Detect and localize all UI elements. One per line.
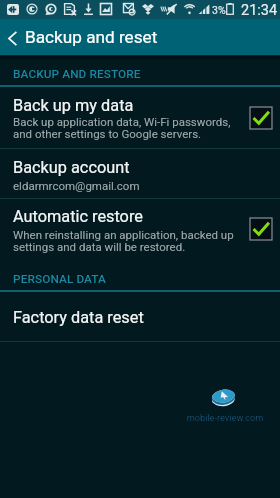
staticText: BACKUP AND RESTORE (13, 67, 141, 81)
staticText: 21:34 (241, 2, 278, 19)
button[interactable] (0, 86, 280, 148)
staticText: Backup and reset (25, 27, 158, 47)
staticText: Back up my data (13, 96, 134, 115)
button[interactable]: Navigate up (0, 19, 24, 55)
button[interactable] (0, 199, 280, 263)
staticText: When reinstalling an application, backed… (13, 228, 234, 241)
staticText: Backup account (13, 158, 130, 177)
staticText: and other settings to Google servers. (13, 127, 202, 140)
staticText: mobile-review.com (185, 412, 265, 423)
staticText: Back up application data, Wi-Fi password… (13, 115, 231, 128)
staticText: PERSONAL DATA (13, 272, 106, 286)
button[interactable]: Checkbox, checked (250, 107, 272, 129)
staticText: 3% (212, 4, 226, 16)
staticText: Factory data reset (13, 308, 144, 327)
button[interactable]: Checkbox, checked (250, 218, 272, 240)
button[interactable] (0, 149, 280, 197)
button[interactable] (0, 291, 280, 340)
staticText: Automatic restore (13, 207, 143, 226)
staticText: eldarmrcom@gmail.com (13, 179, 140, 192)
staticText: settings and data will be restored. (13, 240, 186, 253)
